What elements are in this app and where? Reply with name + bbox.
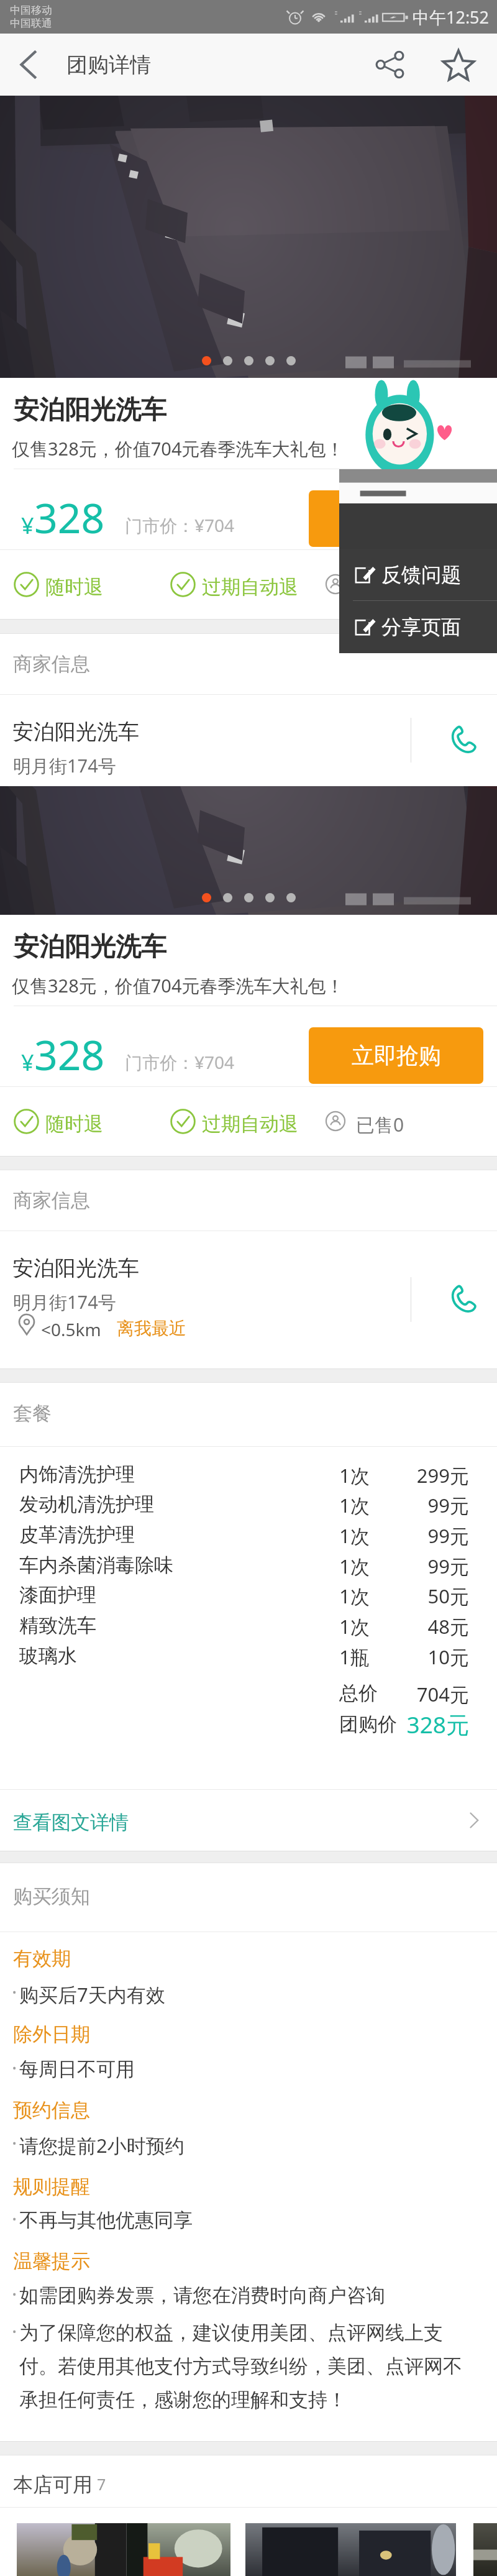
staticText: 精致洗车 (19, 1613, 96, 1638)
button[interactable]: 分享页面 (339, 601, 497, 653)
staticText: 99元 (373, 1553, 469, 1579)
staticText: ¥ (21, 1047, 34, 1078)
staticText: 安泊阳光洗车 (14, 931, 166, 963)
staticText: 如需团购券发票，请您在消费时向商户咨询 (19, 2283, 385, 2308)
staticText: 7 (97, 2473, 106, 2495)
staticText: · (12, 2206, 17, 2232)
staticText: 中国联通 (10, 17, 52, 30)
staticText: 明月街174号 (13, 1290, 116, 1314)
staticText: 查看图文详情 (13, 1810, 129, 1835)
staticText: 明月街174号 (13, 753, 116, 778)
staticText: 团购价 (339, 1712, 397, 1736)
staticText: 99元 (373, 1523, 469, 1549)
button[interactable]: 立即抢购 (309, 1027, 483, 1084)
button[interactable] (0, 1231, 497, 1368)
staticText: 反馈问题 (381, 562, 461, 587)
staticText: 中午12:52 (413, 6, 490, 29)
staticText: 车内杀菌消毒除味 (19, 1553, 173, 1577)
staticText: 299元 (373, 1462, 469, 1488)
staticText: 商家信息 (13, 1188, 90, 1212)
staticText: 328 (34, 1026, 105, 1082)
staticText: 1瓶 (339, 1644, 370, 1670)
staticText: · (12, 2055, 17, 2081)
staticText: 本店可用 (13, 2472, 93, 2497)
staticText: 为了保障您的权益，建议使用美团、点评网线上支付。若使用其他支付方式导致纠纷，美团… (19, 2321, 472, 2413)
staticText: 过期自动退 (202, 1112, 298, 1136)
staticText: 预约信息 (13, 2098, 90, 2122)
button[interactable] (0, 695, 497, 786)
staticText: 商家信息 (13, 652, 90, 676)
staticText: <0.5km (41, 1318, 101, 1341)
staticText: 玻璃水 (19, 1644, 77, 1668)
button[interactable]: 查看图文详情 (0, 1790, 497, 1851)
button[interactable]: 立即抢购 (309, 490, 483, 547)
button[interactable] (127, 2523, 230, 2576)
staticText: 中国移动 (10, 4, 52, 17)
staticText: 购买后7天内有效 (19, 1981, 165, 2007)
staticText: 购买须知 (13, 1884, 90, 1909)
staticText: 门市价：¥704 (125, 1050, 235, 1074)
staticText: 温馨提示 (13, 2249, 90, 2273)
staticText: 过期自动退 (202, 575, 298, 599)
staticText: 704元 (373, 1681, 469, 1707)
staticText: 分享页面 (381, 615, 461, 639)
staticText: 已售0 (356, 575, 404, 600)
staticText: 仅售328元，价值704元春季洗车大礼包！ (12, 436, 344, 461)
staticText: 48元 (373, 1613, 469, 1639)
staticText: 离我最近 (117, 1318, 186, 1339)
staticText: 请您提前2小时预约 (19, 2132, 185, 2158)
staticText: 门市价：¥704 (125, 513, 235, 537)
staticText: ¥ (21, 510, 34, 541)
staticText: 规则提醒 (13, 2175, 90, 2199)
staticText: · (12, 2130, 17, 2156)
button[interactable] (17, 2523, 122, 2576)
staticText: 内饰清洗护理 (19, 1462, 135, 1487)
staticText: 漆面护理 (19, 1583, 96, 1607)
staticText: 10元 (373, 1644, 469, 1670)
button[interactable] (473, 2523, 497, 2576)
staticText: 1次 (339, 1583, 370, 1609)
staticText: 安泊阳光洗车 (14, 394, 166, 426)
staticText: 团购详情 (66, 52, 151, 78)
staticText: 不再与其他优惠同享 (19, 2208, 193, 2232)
staticText: 99元 (373, 1492, 469, 1518)
staticText: 有效期 (13, 1946, 71, 1971)
button[interactable] (245, 2523, 456, 2576)
staticText: · (12, 1979, 17, 2005)
button[interactable]: Share (360, 34, 419, 96)
button[interactable]: Back (0, 34, 57, 96)
staticText: 50元 (373, 1583, 469, 1609)
staticText: 每周日不可用 (19, 2057, 135, 2081)
button[interactable]: Call (429, 1265, 497, 1334)
staticText: 随时退 (45, 1112, 103, 1136)
staticText: 立即抢购 (352, 1042, 441, 1070)
button[interactable]: 反馈问题 (339, 549, 497, 600)
staticText: · (12, 2281, 17, 2307)
staticText: 1次 (339, 1613, 370, 1639)
staticText: 安泊阳光洗车 (12, 1255, 139, 1281)
staticText: 总价 (339, 1681, 378, 1705)
staticText: · (12, 2318, 17, 2344)
button[interactable]: Call (429, 706, 497, 774)
staticText: 已售0 (356, 1112, 404, 1137)
staticText: 皮革清洗护理 (19, 1523, 135, 1547)
staticText: 仅售328元，价值704元春季洗车大礼包！ (12, 973, 344, 998)
staticText: 安泊阳光洗车 (12, 718, 139, 745)
staticText: 随时退 (45, 575, 103, 599)
staticText: 328元 (373, 1708, 469, 1740)
staticText: 套餐 (13, 1401, 52, 1426)
staticText: 1次 (339, 1492, 370, 1518)
button[interactable]: Favorite (429, 34, 488, 96)
staticText: 328 (34, 489, 105, 545)
staticText: 1次 (339, 1462, 370, 1488)
staticText: 1次 (339, 1553, 370, 1579)
staticText: 发动机清洗护理 (19, 1492, 154, 1516)
staticText: 除外日期 (13, 2022, 90, 2047)
staticText: 1次 (339, 1523, 370, 1549)
